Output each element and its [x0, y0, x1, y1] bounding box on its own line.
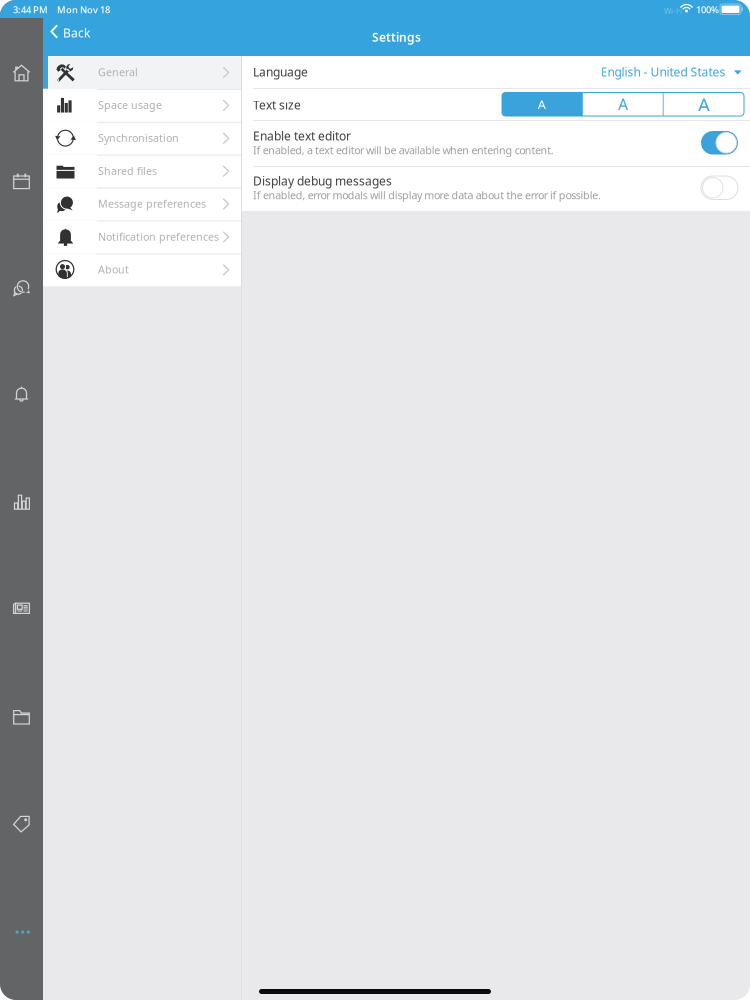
staticText: Space usage: [98, 98, 162, 112]
staticText: Text size: [253, 97, 301, 113]
button[interactable]: Calendar: [12, 172, 30, 190]
staticText: English - United States: [600, 64, 725, 80]
button[interactable]: Message preferences: [43, 188, 241, 220]
staticText: About: [98, 262, 129, 277]
button[interactable]: Enabled: [701, 131, 738, 154]
button[interactable]: A: [664, 92, 744, 116]
button[interactable]: Disabled: [701, 176, 738, 199]
staticText: Notification preferences: [98, 229, 219, 244]
staticText: A: [537, 95, 546, 113]
button[interactable]: About: [43, 253, 241, 286]
button[interactable]: Notifications: [12, 385, 30, 403]
staticText: 3:44 PM: [13, 3, 48, 16]
button[interactable]: A: [583, 92, 663, 116]
button[interactable]: Files: [12, 708, 30, 726]
staticText: Wi-Fi: [664, 5, 682, 16]
staticText: A: [698, 92, 710, 117]
staticText: Display debug messages: [253, 173, 392, 189]
button[interactable]: Language: [242, 56, 750, 88]
button[interactable]: Home: [12, 64, 30, 82]
staticText: A: [618, 94, 628, 115]
staticText: Back: [63, 25, 90, 41]
staticText: Message preferences: [98, 197, 206, 211]
button[interactable]: Statistics: [12, 493, 30, 511]
button[interactable]: Messages: [12, 279, 30, 297]
staticText: General: [98, 65, 138, 79]
button[interactable]: A: [502, 92, 582, 116]
button[interactable]: Back: [43, 18, 101, 56]
staticText: If enabled, a text editor will be availa…: [253, 143, 554, 157]
button[interactable]: Space usage: [43, 89, 241, 122]
button[interactable]: General: [43, 56, 241, 89]
staticText: Mon Nov 18: [57, 3, 110, 16]
button[interactable]: Notification preferences: [43, 220, 241, 253]
staticText: If enabled, error modals will display mo…: [253, 188, 601, 202]
staticText: Synchronisation: [98, 131, 179, 145]
button[interactable]: News: [12, 599, 30, 617]
staticText: Enable text editor: [253, 128, 351, 144]
button[interactable]: Synchronisation: [43, 122, 241, 155]
button[interactable]: Shared files: [43, 155, 241, 188]
staticText: 100%: [696, 3, 719, 16]
button[interactable]: Tags: [12, 815, 30, 833]
staticText: Shared files: [98, 164, 157, 178]
button[interactable]: More: [15, 930, 30, 934]
staticText: Settings: [372, 29, 421, 45]
staticText: Language: [253, 64, 308, 80]
